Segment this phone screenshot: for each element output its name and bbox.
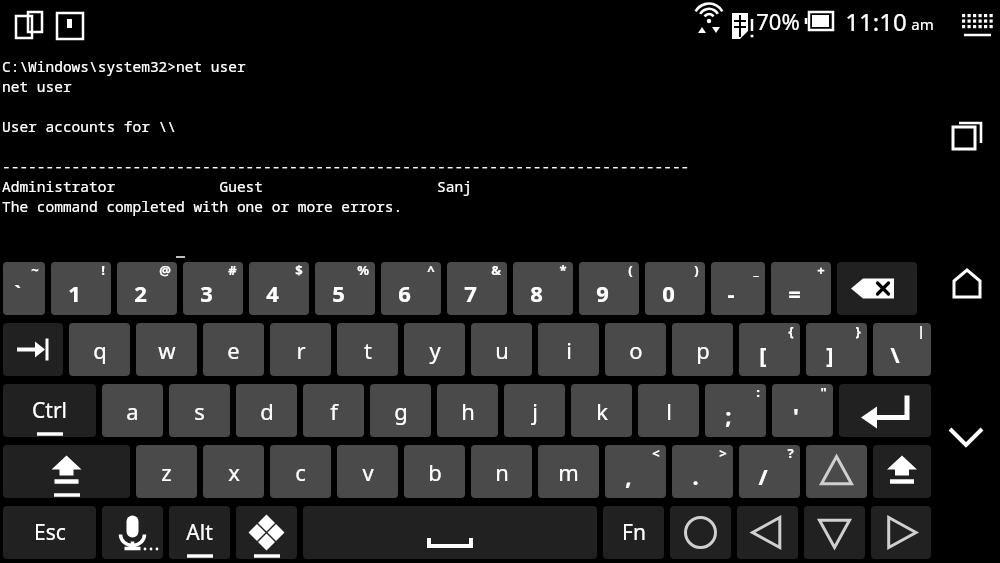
- button[interactable]: y: [404, 323, 465, 376]
- button[interactable]: Up: [806, 445, 867, 498]
- staticText: z: [161, 457, 172, 487]
- button[interactable]: z: [136, 445, 197, 498]
- staticText: v: [362, 457, 374, 487]
- button[interactable]: b: [404, 445, 465, 498]
- button[interactable]: x: [203, 445, 264, 498]
- button[interactable]: s: [169, 384, 230, 437]
- other: App window: [54, 8, 80, 34]
- staticText: C:\Windows\system32>net user: [2, 56, 246, 76]
- staticText: User accounts for \\: [2, 116, 176, 136]
- staticText: w: [158, 335, 176, 365]
- button[interactable]: q: [69, 323, 130, 376]
- button[interactable]: Esc: [3, 506, 96, 559]
- button[interactable]: r: [270, 323, 331, 376]
- button[interactable]: Voice input: [102, 506, 163, 559]
- button[interactable]: a: [102, 384, 163, 437]
- button[interactable]: h: [437, 384, 498, 437]
- button[interactable]: Keyboard settings: [956, 4, 990, 38]
- button[interactable]: Symbols: [236, 506, 297, 559]
- button[interactable]: w: [136, 323, 197, 376]
- button[interactable]: Hide keyboard: [940, 408, 992, 460]
- button[interactable]: Home: [942, 258, 990, 306]
- staticText: h: [461, 396, 475, 426]
- button[interactable]: ;: [705, 384, 766, 437]
- staticText: 1: [68, 278, 81, 308]
- button[interactable]: 5: [315, 262, 375, 315]
- button[interactable]: Backspace: [837, 262, 917, 315]
- button[interactable]: 8: [513, 262, 573, 315]
- staticText: :: [756, 384, 760, 401]
- staticText: Administrator Guest Sanj: [2, 176, 472, 196]
- button[interactable]: j: [504, 384, 565, 437]
- button[interactable]: ,: [605, 445, 666, 498]
- button[interactable]: 3: [183, 262, 243, 315]
- button[interactable]: Alt: [169, 506, 230, 559]
- button[interactable]: Space: [303, 506, 597, 559]
- button[interactable]: 0: [645, 262, 705, 315]
- button[interactable]: n: [471, 445, 532, 498]
- staticText: l: [666, 396, 672, 426]
- staticText: |: [917, 323, 925, 340]
- button[interactable]: 2: [117, 262, 177, 315]
- button[interactable]: f: [303, 384, 364, 437]
- button[interactable]: g: [370, 384, 431, 437]
- button[interactable]: /: [739, 445, 800, 498]
- button[interactable]: 6: [381, 262, 441, 315]
- staticText: k: [596, 396, 608, 426]
- button[interactable]: ]: [806, 323, 867, 376]
- button[interactable]: Down: [804, 506, 865, 559]
- staticText: am: [911, 14, 934, 34]
- button[interactable]: =: [771, 262, 831, 315]
- button[interactable]: Enter: [839, 384, 931, 437]
- button[interactable]: Tab: [3, 323, 63, 376]
- button[interactable]: Right: [871, 506, 931, 559]
- button[interactable]: c: [270, 445, 331, 498]
- staticText: (: [628, 262, 633, 279]
- staticText: Fn: [622, 518, 646, 547]
- staticText: }: [855, 323, 861, 340]
- button[interactable]: k: [571, 384, 632, 437]
- button[interactable]: Circle: [670, 506, 731, 559]
- staticText: [: [759, 339, 767, 369]
- button[interactable]: p: [672, 323, 733, 376]
- button[interactable]: e: [203, 323, 264, 376]
- staticText: 6: [398, 278, 411, 308]
- button[interactable]: l: [638, 384, 699, 437]
- button[interactable]: m: [538, 445, 599, 498]
- staticText: \: [890, 339, 900, 369]
- staticText: 7: [464, 278, 477, 308]
- button[interactable]: Fn: [603, 506, 664, 559]
- button[interactable]: u: [471, 323, 532, 376]
- button[interactable]: Recents: [942, 108, 990, 156]
- button[interactable]: t: [337, 323, 398, 376]
- button[interactable]: d: [236, 384, 297, 437]
- button[interactable]: i: [538, 323, 599, 376]
- button[interactable]: \: [873, 323, 931, 376]
- staticText: ': [793, 400, 799, 430]
- button[interactable]: v: [337, 445, 398, 498]
- staticText: Alt: [186, 518, 213, 547]
- staticText: r: [296, 335, 306, 365]
- staticText: net user: [2, 76, 72, 96]
- button[interactable]: o: [605, 323, 666, 376]
- button[interactable]: Shift: [3, 445, 130, 498]
- button[interactable]: ': [772, 384, 833, 437]
- button[interactable]: -: [711, 262, 765, 315]
- button[interactable]: 7: [447, 262, 507, 315]
- button[interactable]: 4: [249, 262, 309, 315]
- staticText: ----------------------------------------…: [2, 156, 690, 176]
- button[interactable]: 1: [51, 262, 111, 315]
- button[interactable]: Shift: [873, 445, 931, 498]
- button[interactable]: 9: [579, 262, 639, 315]
- staticText: &: [491, 262, 501, 279]
- staticText: ~: [31, 262, 39, 279]
- button[interactable]: [: [739, 323, 800, 376]
- staticText: Ctrl: [32, 396, 67, 425]
- button[interactable]: `: [3, 262, 45, 315]
- staticText: The command completed with one or more e…: [2, 196, 403, 216]
- staticText: x: [228, 457, 240, 487]
- button[interactable]: .: [672, 445, 733, 498]
- button[interactable]: Ctrl: [3, 384, 96, 437]
- staticText: -: [727, 278, 735, 308]
- button[interactable]: Left: [737, 506, 798, 559]
